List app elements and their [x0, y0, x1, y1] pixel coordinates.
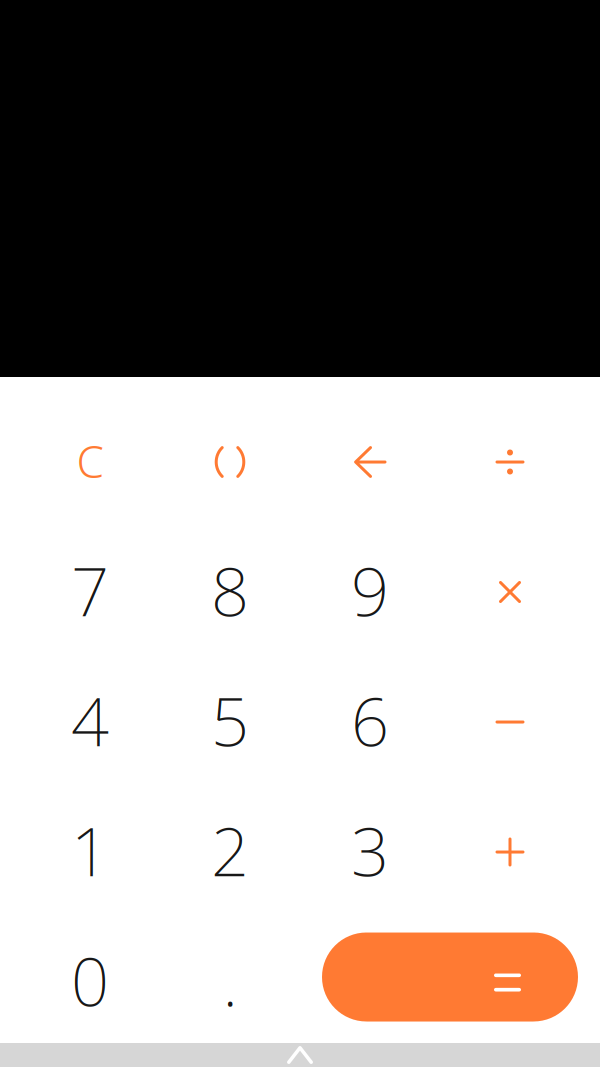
- staticText: 8: [211, 546, 249, 635]
- staticText: 3: [351, 806, 389, 895]
- button[interactable]: Parentheses: [160, 397, 300, 527]
- button[interactable]: 3: [300, 787, 440, 917]
- button[interactable]: Equals: [300, 917, 580, 1043]
- staticText: 4: [71, 676, 109, 765]
- staticText: .: [222, 936, 237, 1025]
- staticText: 5: [211, 676, 249, 765]
- button[interactable]: 4: [20, 657, 160, 787]
- button[interactable]: 6: [300, 657, 440, 787]
- staticText: C: [76, 432, 103, 490]
- staticText: 9: [351, 546, 389, 635]
- button[interactable]: C: [20, 397, 160, 527]
- button[interactable]: Multiply: [440, 527, 580, 657]
- button[interactable]: 2: [160, 787, 300, 917]
- staticText: 0: [71, 936, 109, 1025]
- button[interactable]: Plus: [440, 787, 580, 917]
- button[interactable]: 8: [160, 527, 300, 657]
- staticText: 6: [351, 676, 389, 765]
- staticText: 7: [71, 546, 109, 635]
- button[interactable]: Backspace: [300, 397, 440, 527]
- button[interactable]: Divide: [440, 397, 580, 527]
- button[interactable]: 5: [160, 657, 300, 787]
- button[interactable]: 9: [300, 527, 440, 657]
- button[interactable]: 0: [20, 917, 160, 1043]
- button[interactable]: 1: [20, 787, 160, 917]
- button[interactable]: Minus: [440, 657, 580, 787]
- button[interactable]: 7: [20, 527, 160, 657]
- staticText: 1: [71, 806, 109, 895]
- button[interactable]: .: [160, 917, 300, 1043]
- button[interactable]: Hide keypad: [0, 1043, 600, 1067]
- staticText: 2: [211, 806, 249, 895]
